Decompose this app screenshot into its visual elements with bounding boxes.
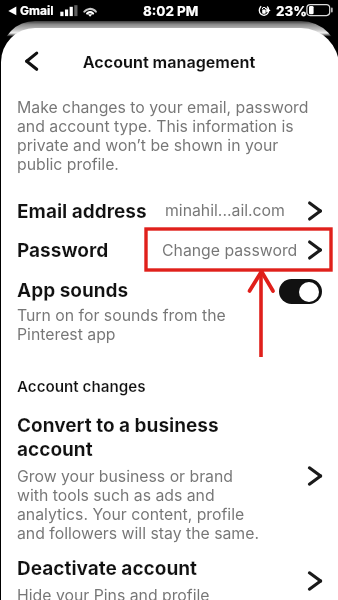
- button[interactable]: App sounds toggle: [279, 279, 322, 304]
- button[interactable]: Email address: [0, 194, 338, 227]
- staticText: Change password: [162, 241, 298, 260]
- button[interactable]: Password: [0, 232, 338, 268]
- other: Open convert to business account: [304, 465, 326, 487]
- staticText: Gmail: [20, 3, 54, 18]
- other: Open deactivate account: [304, 570, 326, 592]
- staticText: minahil...ail.com: [165, 201, 285, 220]
- staticText: Account management: [0, 53, 338, 72]
- staticText: Hide your Pins and profile: [17, 585, 210, 600]
- button[interactable]: App sounds: [0, 273, 338, 343]
- staticText: Password: [17, 239, 109, 261]
- staticText: Account changes: [17, 378, 146, 396]
- staticText: 23%: [276, 3, 307, 19]
- staticText: 8:02 PM: [143, 3, 199, 19]
- staticText: Turn on for sounds from the Pinterest ap…: [17, 305, 239, 343]
- staticText: Convert to a business account: [17, 413, 235, 461]
- staticText: Make changes to your email, password and…: [17, 97, 319, 173]
- button[interactable]: Deactivate account: [0, 553, 338, 600]
- button[interactable]: Convert to a business account: [0, 410, 338, 544]
- staticText: Grow your business or brand with tools s…: [17, 466, 267, 542]
- staticText: Email address: [17, 200, 147, 222]
- staticText: Deactivate account: [17, 556, 198, 580]
- button[interactable]: Back: [13, 44, 47, 78]
- staticText: App sounds: [17, 279, 129, 301]
